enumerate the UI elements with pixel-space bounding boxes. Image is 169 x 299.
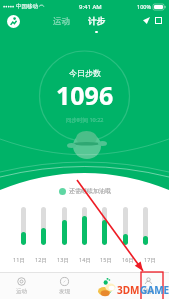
staticText: 13日 [57,256,69,264]
staticText: 发现 [59,288,70,295]
staticText: 计步 [88,16,105,27]
staticText: 我的 [143,288,154,295]
staticText: 1096 [56,78,114,112]
staticText: 100% [137,3,152,10]
staticText: 14日 [79,256,91,264]
button[interactable]: 运动 [0,273,43,299]
staticText: 11日 [13,256,25,264]
staticText: 中国移动 [16,3,38,10]
staticText: 运动 [53,16,70,27]
staticText: 3DM [117,283,140,297]
staticText: 15日 [100,256,112,264]
button[interactable]: Profile [7,15,20,28]
staticText: 12日 [35,256,47,264]
button[interactable]: 计步 [80,13,113,30]
button[interactable]: Share [142,16,151,25]
staticText: 今日步数 [69,68,101,78]
button[interactable]: More [154,16,163,25]
staticText: 16日 [122,256,134,264]
staticText: 9:41 AM [79,3,102,11]
button[interactable]: 计步 [85,273,127,299]
staticText: 计步 [101,288,112,295]
staticText: 还需继续加油哦 [69,187,111,195]
staticText: 同步时间 10:22 [66,116,104,124]
staticText: 运动 [16,288,27,295]
staticText: ••••• [3,3,15,11]
staticText: GAME [140,283,169,297]
button[interactable]: 发现 [43,273,85,299]
staticText: 17日 [144,256,156,264]
button[interactable]: 运动 [45,13,78,30]
button[interactable]: 我的 [127,273,169,299]
